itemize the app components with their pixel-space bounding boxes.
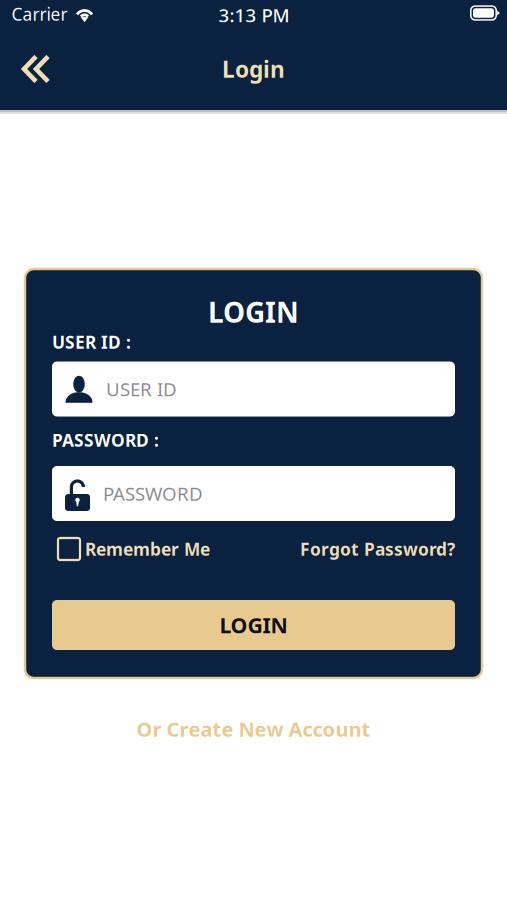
button[interactable]: Back: [5, 40, 67, 98]
staticText: LOGIN: [219, 611, 287, 639]
staticText: Login: [222, 54, 285, 84]
button[interactable]: Forgot Password?: [285, 534, 455, 564]
button[interactable]: PASSWORD: [52, 466, 455, 521]
button[interactable]: Or Create New Account: [103, 713, 403, 745]
staticText: PASSWORD :: [52, 428, 159, 451]
staticText: Forgot Password?: [300, 537, 455, 560]
staticText: USER ID :: [52, 330, 131, 353]
staticText: Remember Me: [85, 537, 210, 560]
button[interactable]: LOGIN: [52, 600, 455, 650]
button[interactable]: USER ID: [52, 361, 455, 416]
staticText: LOGIN: [208, 293, 299, 331]
staticText: PASSWORD: [103, 481, 203, 506]
staticText: Carrier: [11, 2, 67, 25]
staticText: 3:13 PM: [218, 3, 289, 27]
button[interactable]: Remember Me: [58, 534, 240, 564]
staticText: Or Create New Account: [136, 716, 370, 742]
staticText: USER ID: [106, 377, 177, 401]
